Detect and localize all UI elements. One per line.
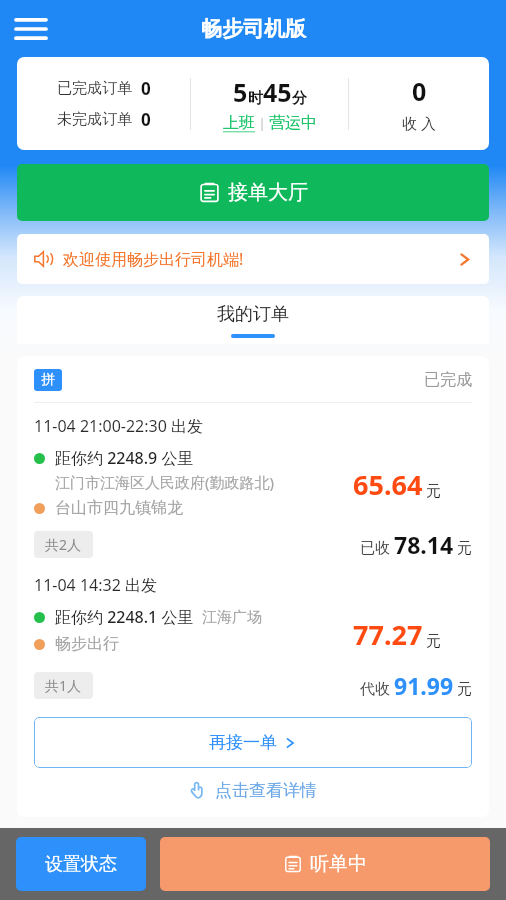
staticText: 未完成订单 <box>57 110 132 129</box>
button[interactable]: 上班 <box>223 113 255 133</box>
staticText: 设置状态 <box>45 853 117 876</box>
staticText: 已完成 <box>424 370 472 390</box>
button[interactable]: 拼 <box>17 356 489 817</box>
button[interactable]: Menu <box>6 4 56 54</box>
staticText: 江海广场 <box>202 608 262 627</box>
staticText: 点击查看详情 <box>215 780 317 801</box>
staticText: 11-04 21:00-22:30 出发 <box>34 415 204 437</box>
staticText: 欢迎使用畅步出行司机端! <box>63 248 244 270</box>
button[interactable]: 听单中 <box>160 837 490 891</box>
staticText: 5 <box>233 75 248 109</box>
staticText: 接单大厅 <box>228 180 308 205</box>
staticText: 拼 <box>41 371 55 389</box>
staticText: | <box>255 114 269 132</box>
button[interactable]: 再接一单 <box>34 717 472 768</box>
button[interactable]: 已完成订单 <box>17 57 489 150</box>
button[interactable]: 我的订单 <box>217 303 289 338</box>
staticText: 畅步出行 <box>55 634 119 654</box>
staticText: 11-04 14:32 出发 <box>34 574 157 596</box>
staticText: 分 <box>292 89 307 108</box>
button[interactable]: 设置状态 <box>16 837 146 891</box>
staticText: 78.14 <box>394 529 454 560</box>
button[interactable]: 欢迎使用畅步出行司机端! <box>17 234 489 284</box>
staticText: 元 <box>457 680 472 699</box>
staticText: 台山市四九镇锦龙 <box>55 498 183 518</box>
staticText: 已收 <box>360 539 390 558</box>
staticText: 代收 <box>360 680 390 699</box>
staticText: 共2人 <box>45 535 82 554</box>
staticText: 听单中 <box>310 852 367 876</box>
button[interactable]: 营运中 <box>269 113 317 133</box>
staticText: 0 <box>141 108 151 131</box>
staticText: 我的订单 <box>217 303 289 326</box>
staticText: 共1人 <box>45 676 82 695</box>
staticText: 再接一单 <box>209 732 277 753</box>
staticText: 畅步司机版 <box>201 16 306 42</box>
staticText: 91.99 <box>394 670 454 701</box>
staticText: 元 <box>457 539 472 558</box>
staticText: 已完成订单 <box>57 79 132 98</box>
staticText: 江门市江海区人民政府(勤政路北) <box>55 472 275 492</box>
staticText: 元 <box>426 632 441 651</box>
button[interactable]: 点击查看详情 <box>34 780 472 801</box>
staticText: 距你约 2248.9 公里 <box>55 447 194 469</box>
staticText: 元 <box>426 482 441 501</box>
button[interactable]: 接单大厅 <box>17 164 489 221</box>
staticText: 收 入 <box>402 113 436 133</box>
staticText: 0 <box>412 74 427 108</box>
staticText: 45 <box>263 75 292 109</box>
staticText: 距你约 2248.1 公里 <box>55 606 194 628</box>
staticText: 时 <box>248 89 263 108</box>
staticText: 65.64 <box>353 466 423 503</box>
staticText: 77.27 <box>353 616 423 653</box>
staticText: 0 <box>141 77 151 100</box>
